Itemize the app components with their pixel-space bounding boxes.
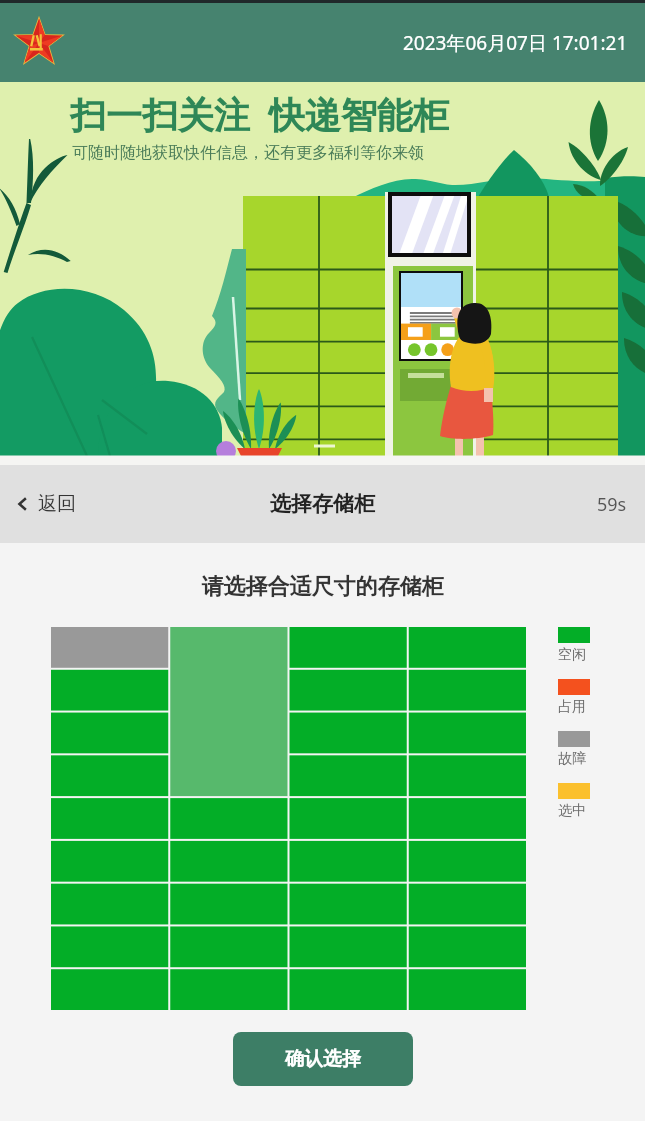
- staticText: 选中: [558, 802, 586, 820]
- staticText: 返回: [38, 492, 76, 516]
- button[interactable]: 选中: [558, 783, 590, 820]
- button[interactable]: 空闲: [558, 627, 590, 664]
- staticText: 可随时随地获取快件信息，还有更多福利等你来领: [72, 143, 645, 163]
- button[interactable]: 故障: [558, 731, 590, 768]
- staticText: 请选择合适尺寸的存储柜: [0, 573, 645, 601]
- staticText: 扫一扫关注 快递智能柜: [70, 90, 645, 139]
- staticText: 选择存储柜: [270, 491, 375, 517]
- button[interactable]: [51, 627, 528, 1012]
- staticText: 2023年06月07日 17:01:21: [403, 30, 628, 56]
- staticText: 59s: [597, 492, 627, 517]
- staticText: 占用: [558, 698, 586, 716]
- button[interactable]: 占用: [558, 679, 590, 716]
- button[interactable]: 确认选择: [233, 1032, 413, 1086]
- other: Logo: [10, 14, 68, 72]
- staticText: 空闲: [558, 646, 586, 664]
- staticText: 故障: [558, 750, 586, 768]
- button[interactable]: 返回: [14, 492, 76, 516]
- staticText: 确认选择: [285, 1047, 361, 1071]
